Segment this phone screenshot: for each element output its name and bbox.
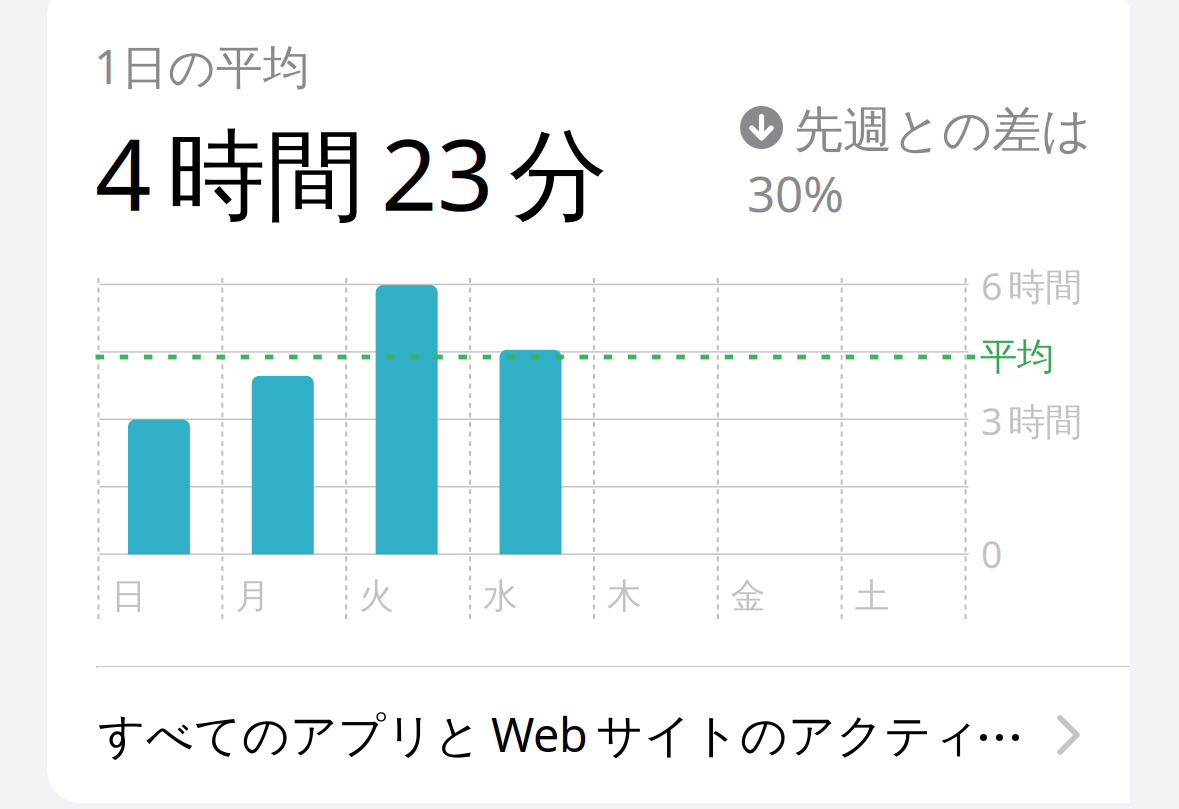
staticText: 6 時間 xyxy=(981,261,1082,311)
button[interactable]: すべてのアプリと Web サイトのアクティ xyxy=(97,667,1130,803)
staticText: 30% xyxy=(747,160,844,225)
staticText: 0 xyxy=(981,529,1002,579)
staticText: 平均 xyxy=(980,334,1054,380)
staticText: 月 xyxy=(235,575,270,618)
staticText: 日 xyxy=(111,575,146,618)
staticText: 金 xyxy=(731,575,766,618)
staticText: 土 xyxy=(855,575,890,618)
staticText: 先週との差は xyxy=(794,100,1091,161)
staticText: 火 xyxy=(359,575,394,618)
staticText: 3 時間 xyxy=(981,396,1082,446)
staticText: すべてのアプリと Web サイトのアクティ xyxy=(98,703,980,765)
staticText: 木 xyxy=(607,575,642,618)
staticText: 1日の平均 xyxy=(94,35,310,97)
staticText: 4 時間 23 分 xyxy=(95,107,608,238)
staticText: 水 xyxy=(483,575,518,618)
